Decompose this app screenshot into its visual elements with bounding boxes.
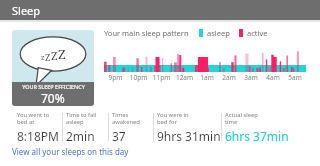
staticText: 11pm bbox=[150, 73, 173, 82]
staticText: 6hrs 37min bbox=[225, 128, 289, 144]
button[interactable]: z bbox=[12, 30, 94, 106]
staticText: 9hrs 31min bbox=[157, 128, 221, 144]
button[interactable]: View all your sleeps on this day bbox=[12, 146, 320, 157]
staticText: Your main sleep pattern bbox=[104, 28, 189, 38]
staticText: Times awakened bbox=[112, 111, 140, 126]
staticText: 10pm bbox=[127, 73, 150, 82]
staticText: active bbox=[247, 28, 268, 38]
staticText: You were in bed for bbox=[157, 111, 189, 126]
staticText: Z bbox=[51, 48, 58, 63]
staticText: 5am bbox=[284, 73, 306, 82]
staticText: Time to fall asleep bbox=[66, 111, 97, 126]
staticText: 2min bbox=[66, 128, 95, 144]
staticText: 4am bbox=[262, 73, 284, 82]
staticText: 12am bbox=[173, 73, 196, 82]
staticText: 3am bbox=[240, 73, 262, 82]
staticText: YOUR SLEEP EFFICIENCY bbox=[22, 83, 85, 90]
staticText: You went to bed at bbox=[17, 111, 50, 126]
staticText: Actual sleep time bbox=[225, 111, 258, 126]
staticText: 70% bbox=[41, 90, 65, 106]
staticText: 1am bbox=[196, 73, 218, 82]
staticText: asleep bbox=[207, 28, 230, 38]
staticText: Z bbox=[45, 51, 51, 63]
staticText: Z bbox=[58, 45, 66, 63]
staticText: Sleep bbox=[12, 3, 41, 18]
staticText: 9pm bbox=[104, 73, 127, 82]
staticText: 2am bbox=[218, 73, 240, 82]
staticText: View all your sleeps on this day bbox=[12, 146, 129, 157]
staticText: 37 bbox=[112, 128, 126, 144]
staticText: 8:18PM bbox=[17, 128, 59, 144]
staticText: z bbox=[41, 53, 45, 63]
